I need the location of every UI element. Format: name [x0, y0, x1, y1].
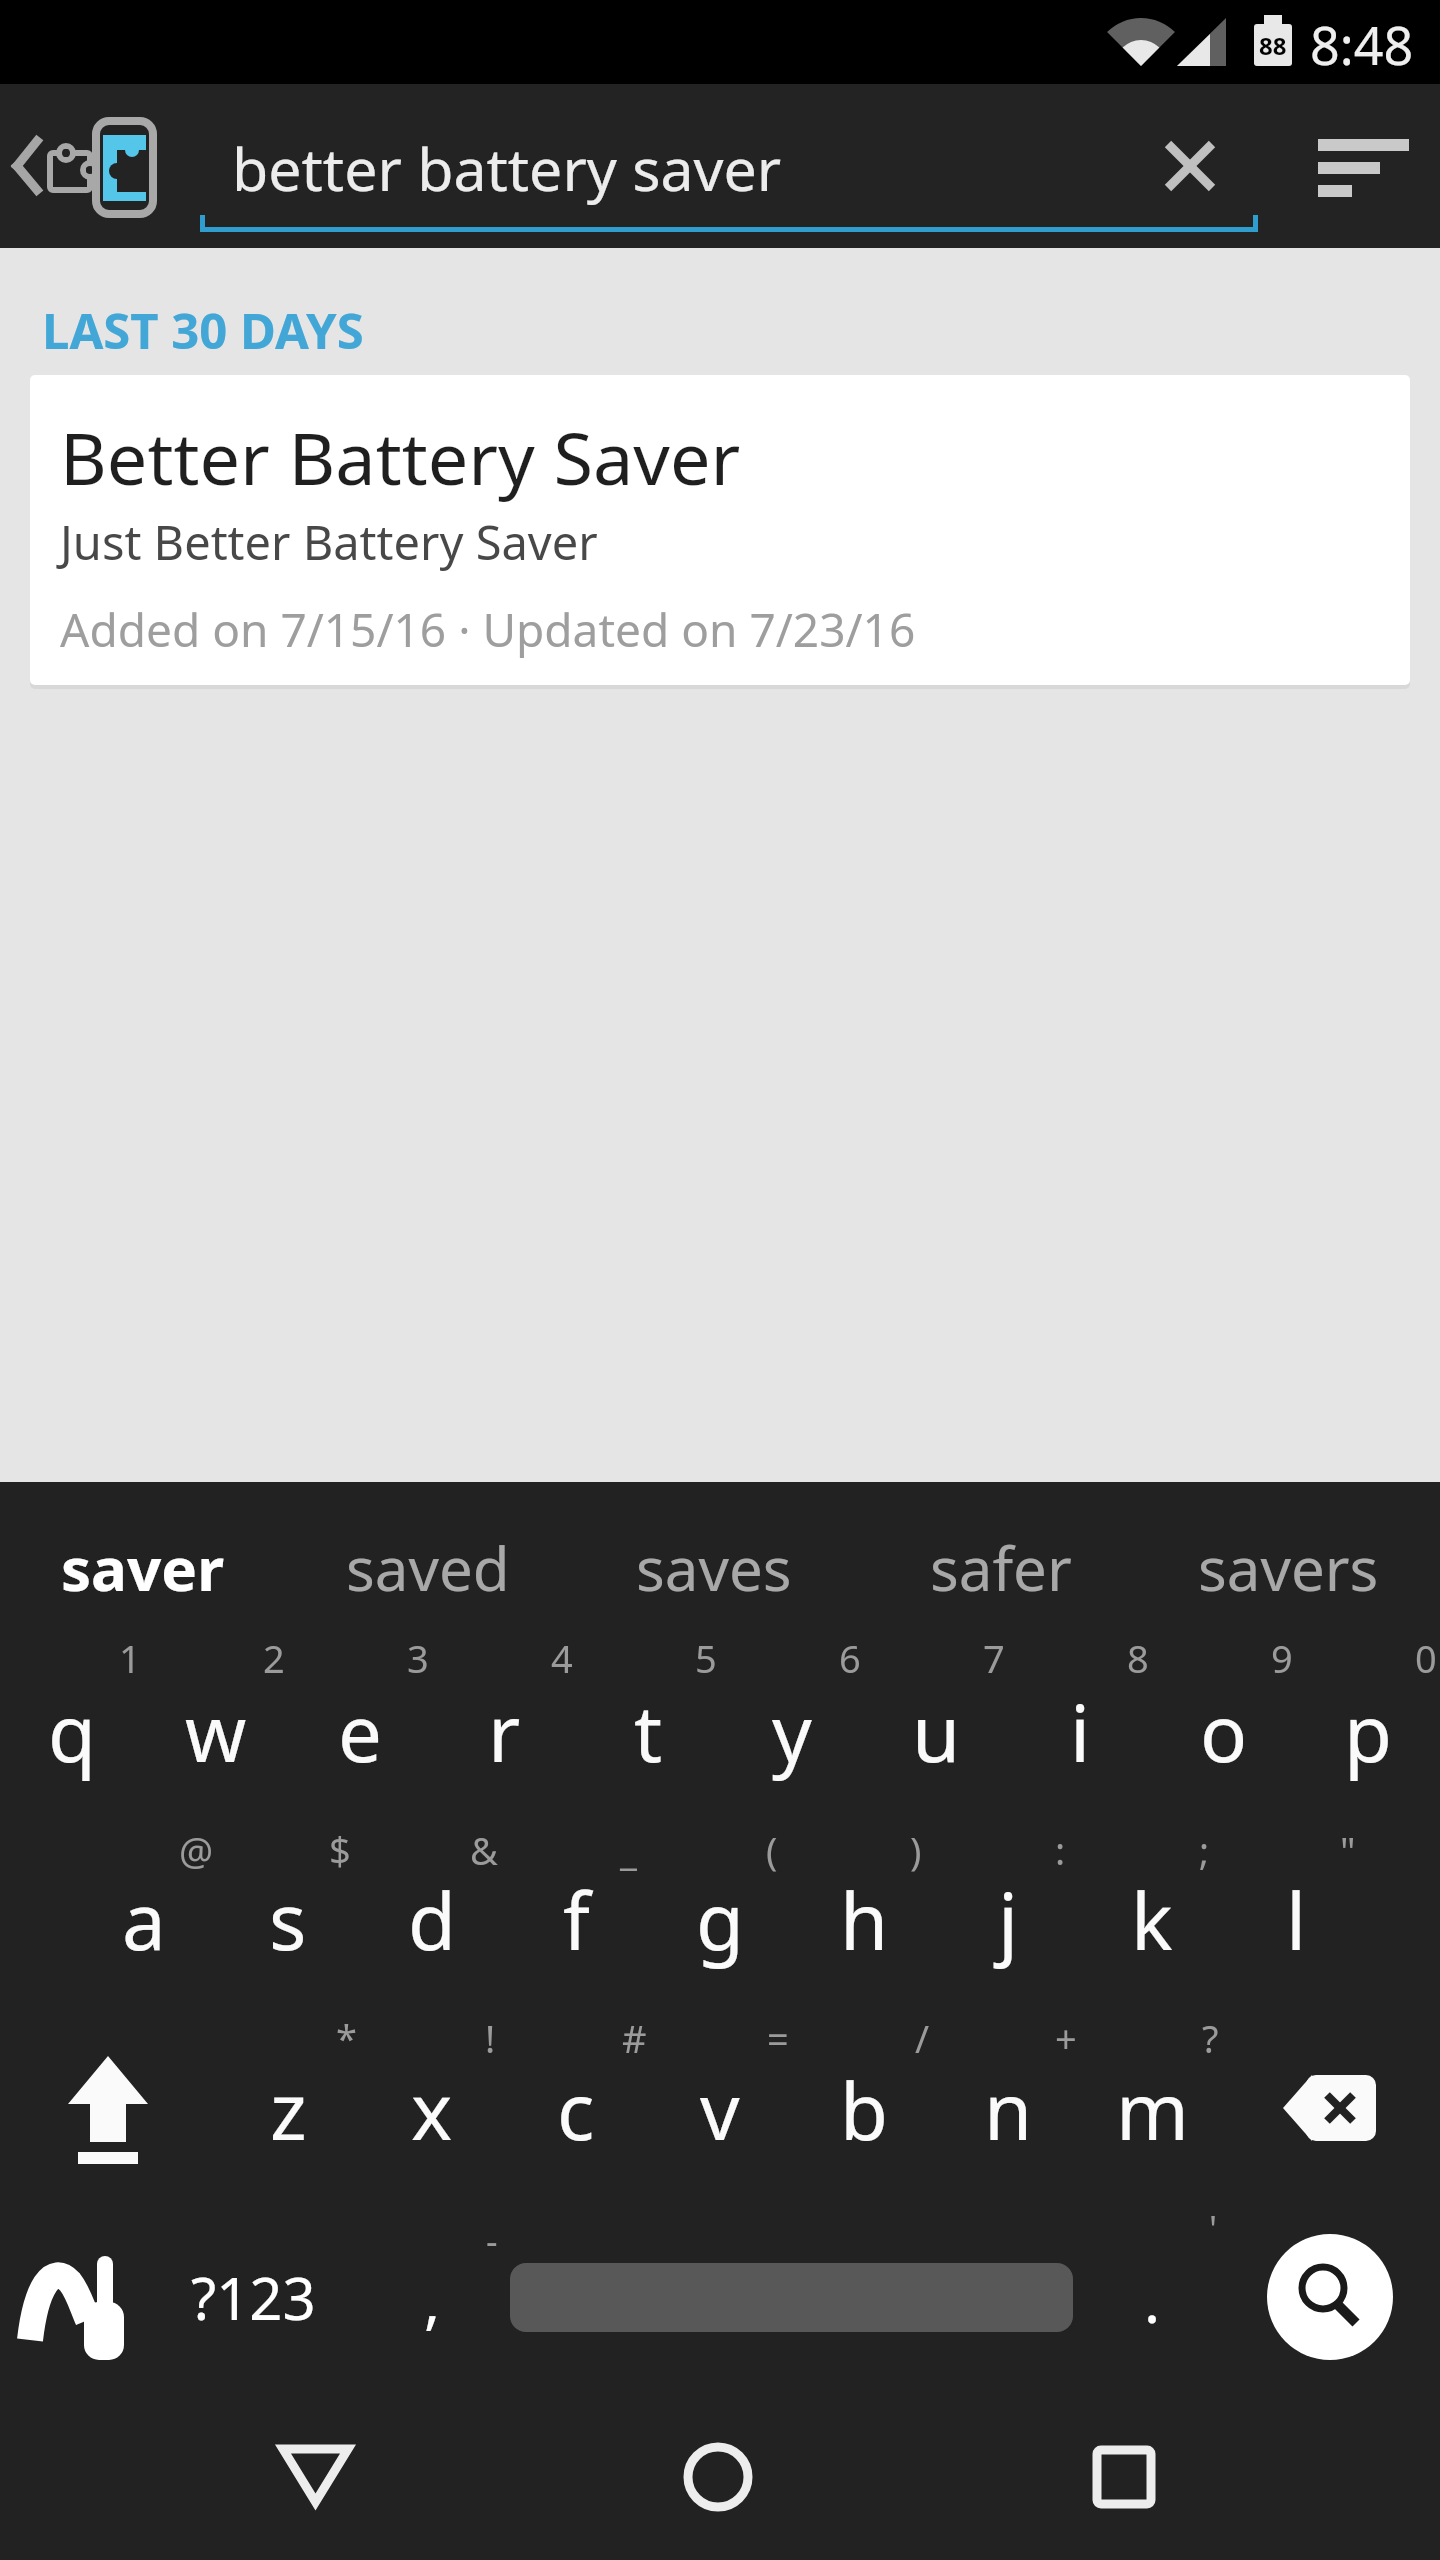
staticText: _ — [620, 1824, 637, 1876]
button[interactable]: p — [1298, 1667, 1438, 1797]
button[interactable] — [255, 2420, 375, 2540]
staticText: t — [634, 1679, 663, 1785]
button[interactable]: z — [218, 2045, 358, 2175]
button[interactable]: y — [722, 1667, 862, 1797]
staticText: , — [424, 2259, 441, 2341]
staticText: i — [1070, 1679, 1091, 1785]
button[interactable]: v — [650, 2045, 790, 2175]
staticText: 3 — [407, 1632, 429, 1684]
button[interactable]: f — [506, 1855, 646, 1985]
staticText: d — [408, 1867, 456, 1973]
button[interactable]: i — [1010, 1667, 1150, 1797]
button[interactable]: c — [506, 2045, 646, 2175]
staticText: Just Better Battery Saver — [60, 510, 598, 574]
button[interactable] — [0, 84, 1440, 248]
staticText: c — [557, 2057, 595, 2163]
staticText: : — [1055, 1824, 1066, 1876]
button[interactable]: ?123 — [153, 2237, 353, 2357]
staticText: e — [338, 1679, 382, 1785]
staticText: g — [696, 1867, 744, 1973]
button[interactable]: x — [362, 2045, 502, 2175]
staticText: saved — [346, 1527, 510, 1609]
staticText: h — [840, 1867, 889, 1973]
button[interactable]: l — [1226, 1855, 1366, 1985]
staticText: * — [336, 2012, 357, 2064]
staticText: saves — [636, 1527, 792, 1609]
staticText: o — [1200, 1679, 1248, 1785]
button[interactable]: m — [1082, 2045, 1222, 2175]
button[interactable]: s — [218, 1855, 358, 1985]
button[interactable]: u — [866, 1667, 1006, 1797]
staticText: Added on 7/15/16 · Updated on 7/23/16 — [60, 598, 916, 661]
staticText: ! — [485, 2012, 496, 2064]
button[interactable]: safer — [891, 1508, 1111, 1628]
button[interactable] — [1300, 120, 1420, 216]
staticText: 2 — [263, 1632, 285, 1684]
button[interactable] — [25, 2240, 135, 2360]
staticText: x — [411, 2057, 453, 2163]
staticText: 0 — [1415, 1632, 1437, 1684]
button[interactable]: t — [578, 1667, 718, 1797]
staticText: q — [48, 1679, 96, 1785]
button[interactable] — [1150, 126, 1230, 206]
staticText: m — [1116, 2057, 1189, 2163]
button[interactable]: e — [290, 1667, 430, 1797]
staticText: . — [1144, 2259, 1161, 2341]
button[interactable]: q — [2, 1667, 142, 1797]
staticText: 7 — [983, 1632, 1005, 1684]
button[interactable] — [40, 2050, 180, 2170]
button[interactable]: o — [1154, 1667, 1294, 1797]
staticText: = — [767, 2012, 789, 2064]
staticText: 1 — [119, 1632, 141, 1684]
button[interactable] — [30, 375, 1410, 685]
staticText: & — [470, 1824, 498, 1876]
button[interactable]: , — [387, 2240, 477, 2360]
button[interactable]: d — [362, 1855, 502, 1985]
staticText: ' — [1209, 2204, 1218, 2253]
staticText: y — [772, 1679, 812, 1785]
button[interactable]: saves — [604, 1508, 824, 1628]
staticText: 88 — [1259, 29, 1287, 62]
staticText: b — [840, 2057, 888, 2163]
button[interactable] — [1267, 2234, 1393, 2360]
staticText: u — [912, 1679, 961, 1785]
button[interactable]: saved — [318, 1508, 538, 1628]
staticText: p — [1344, 1679, 1392, 1785]
button[interactable]: h — [794, 1855, 934, 1985]
staticText: 5 — [695, 1632, 717, 1684]
staticText: 8:48 — [1310, 9, 1414, 80]
staticText: Better Battery Saver — [60, 408, 741, 506]
button[interactable]: n — [938, 2045, 1078, 2175]
button[interactable]: . — [1107, 2240, 1197, 2360]
staticText: ; — [1199, 1824, 1210, 1876]
staticText: 8 — [1127, 1632, 1149, 1684]
staticText: + — [1055, 2012, 1077, 2064]
staticText: v — [700, 2057, 740, 2163]
staticText: 4 — [551, 1632, 573, 1684]
staticText: j — [998, 1867, 1019, 1973]
button[interactable]: a — [74, 1855, 214, 1985]
staticText: $ — [329, 1824, 351, 1876]
staticText: / — [915, 2012, 930, 2064]
button[interactable]: j — [938, 1855, 1078, 1985]
button[interactable] — [1260, 2050, 1400, 2170]
staticText: savers — [1198, 1527, 1379, 1609]
staticText: f — [563, 1867, 590, 1973]
staticText: n — [984, 2057, 1033, 2163]
button[interactable]: b — [794, 2045, 934, 2175]
button[interactable] — [510, 2263, 1073, 2332]
button[interactable]: savers — [1178, 1508, 1398, 1628]
button[interactable]: r — [434, 1667, 574, 1797]
button[interactable]: w — [146, 1667, 286, 1797]
staticText: ?123 — [191, 2258, 316, 2337]
staticText: better battery saver — [232, 128, 782, 208]
button[interactable]: saver — [32, 1508, 252, 1628]
staticText: " — [1340, 1824, 1356, 1876]
button[interactable] — [658, 2420, 778, 2540]
staticText: # — [622, 2012, 647, 2064]
staticText: 6 — [839, 1632, 861, 1684]
button[interactable]: g — [650, 1855, 790, 1985]
button[interactable] — [1064, 2420, 1184, 2540]
button[interactable]: k — [1082, 1855, 1222, 1985]
staticText: @ — [179, 1824, 214, 1876]
